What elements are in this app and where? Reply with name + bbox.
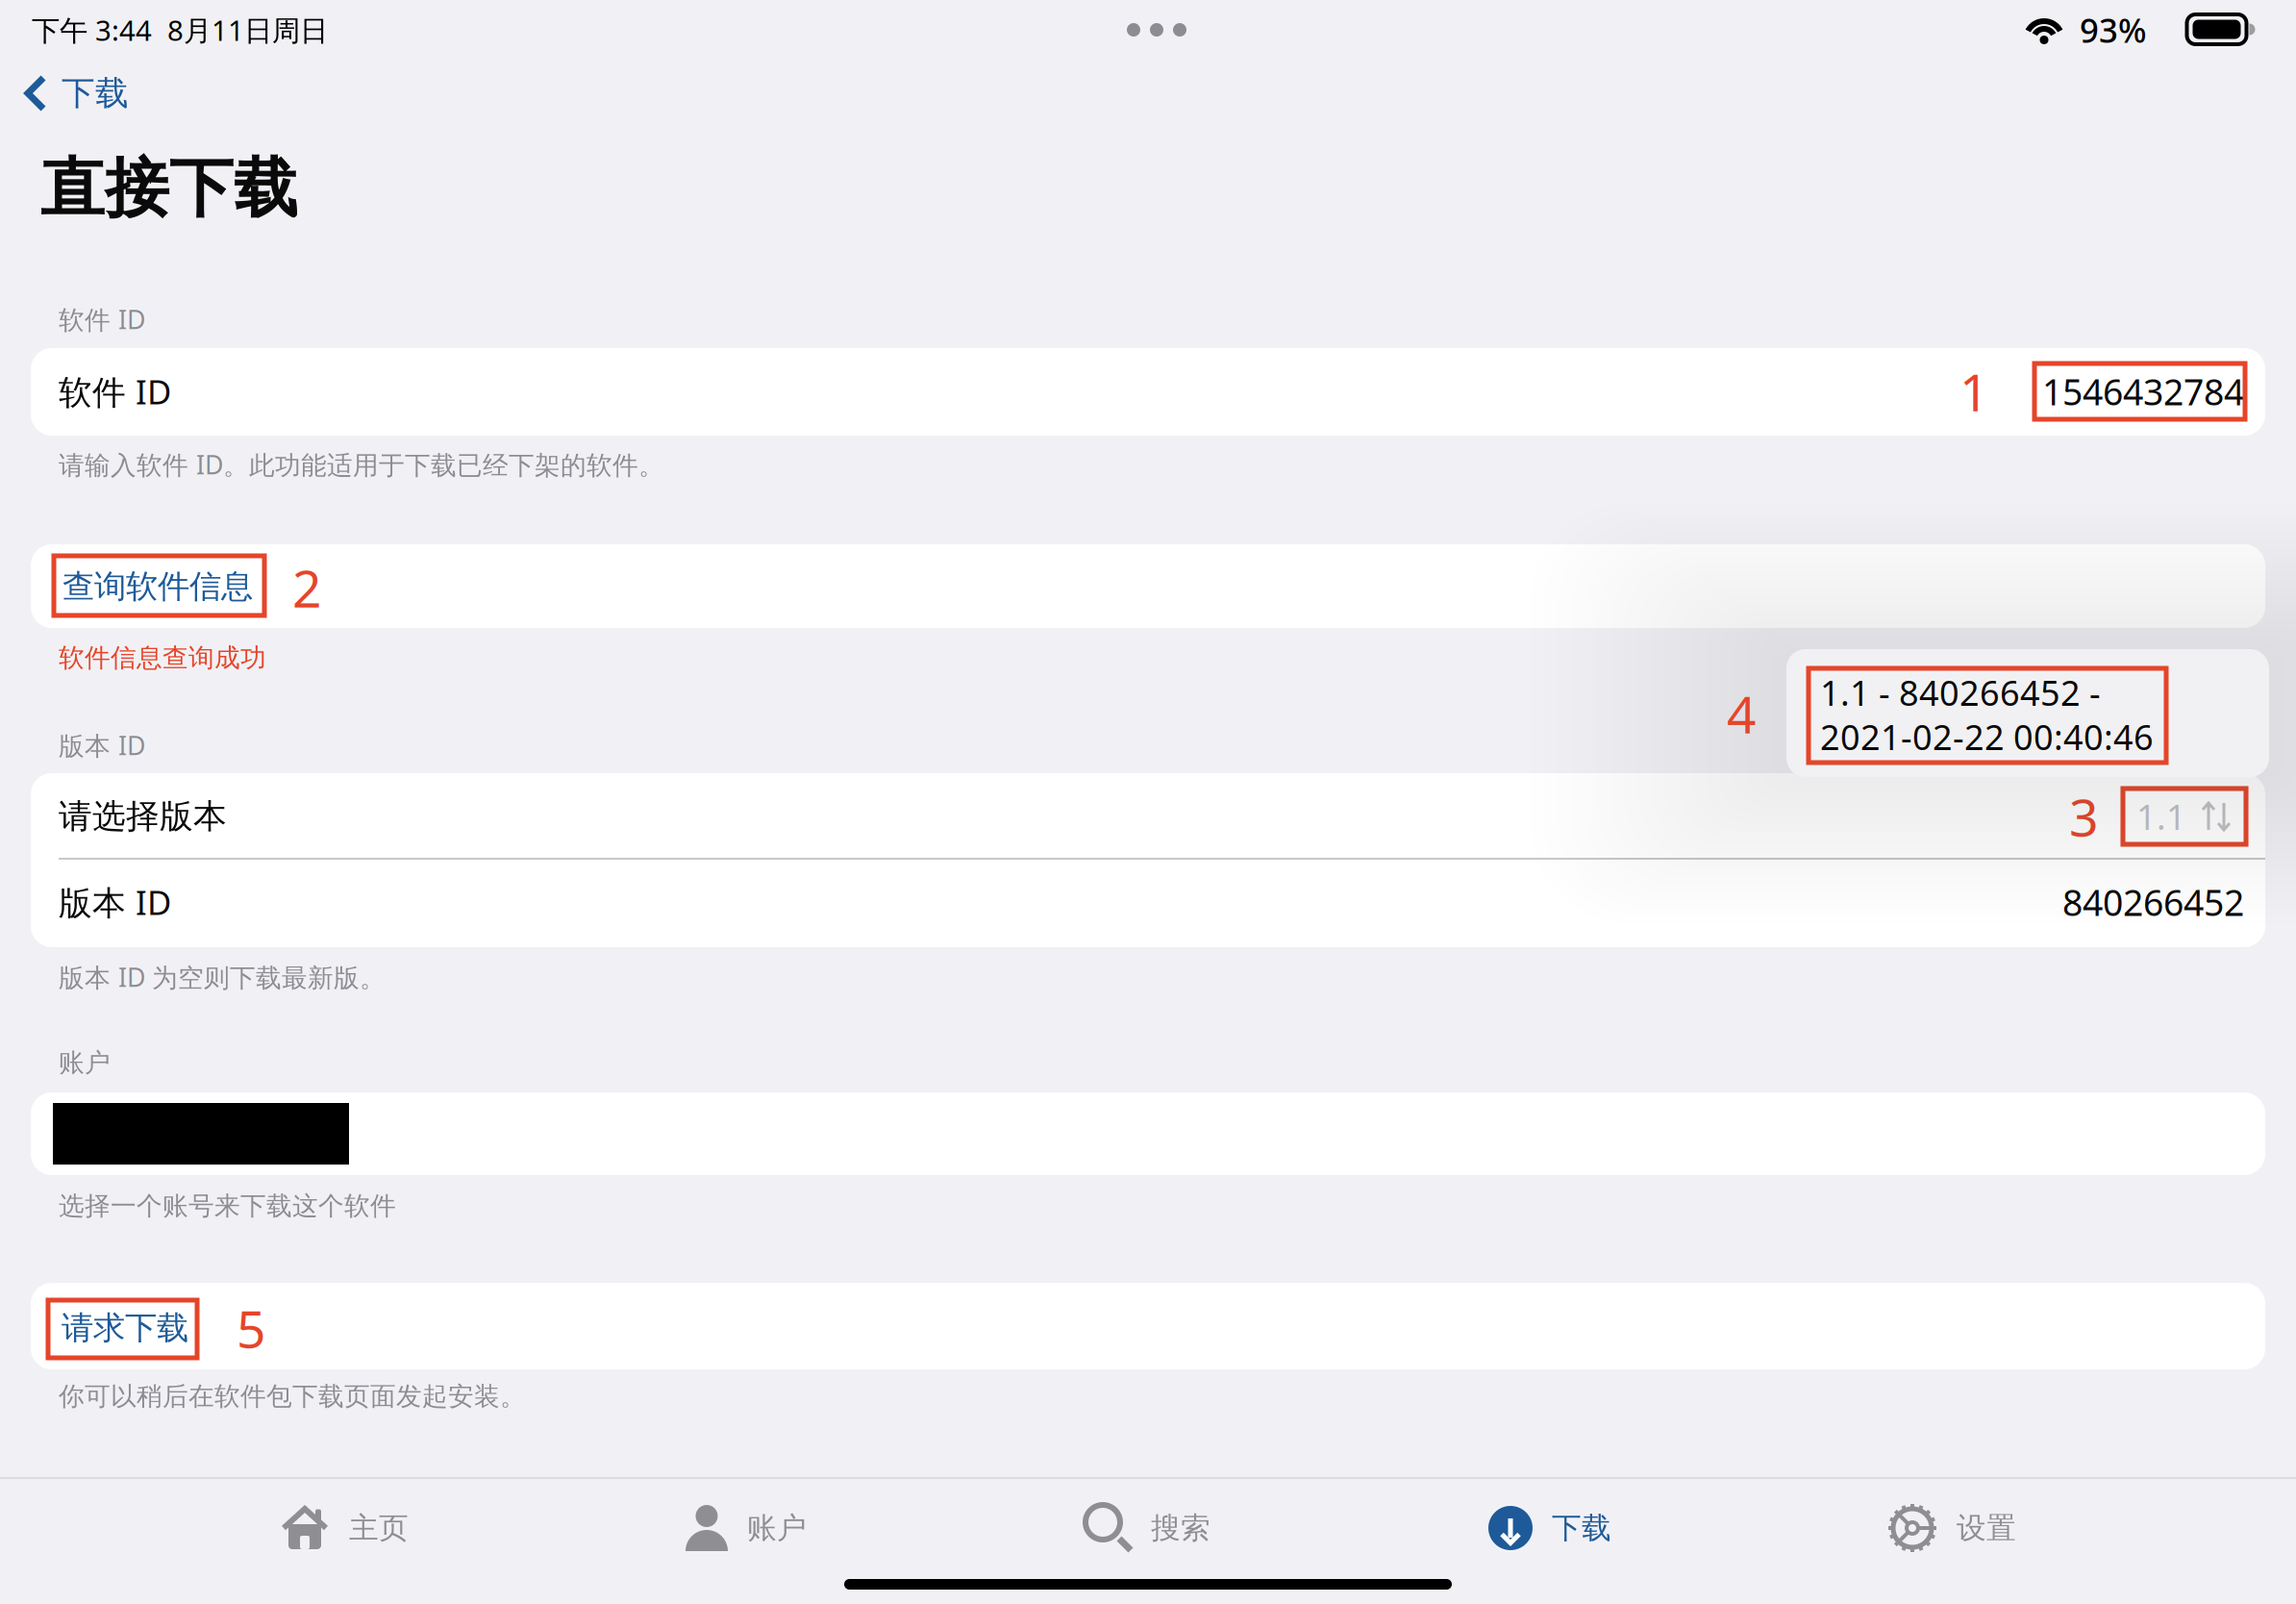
staticText: 下午 3:44 <box>32 11 152 49</box>
button[interactable]: 设置 <box>1751 1480 2153 1576</box>
staticText: 2 <box>292 554 322 622</box>
button[interactable]: 查询软件信息 <box>0 0 2296 1604</box>
staticText: 下载 <box>62 73 129 114</box>
staticText: 请输入软件 ID。此功能适用于下载已经下架的软件。 <box>59 447 664 481</box>
button[interactable]: 1.1 - 840266452 - <box>0 0 2296 1604</box>
staticText: 软件 ID <box>59 302 145 336</box>
staticText: 版本 ID 为空则下载最新版。 <box>59 960 386 994</box>
staticText: 你可以稍后在软件包下载页面发起安装。 <box>59 1381 526 1412</box>
button[interactable]: 下载 <box>1349 1480 1751 1576</box>
staticText: 下载 <box>1552 1510 1611 1546</box>
staticText: 主页 <box>349 1510 409 1546</box>
staticText: 版本 ID <box>59 728 145 762</box>
staticText: 5 <box>237 1294 266 1362</box>
button[interactable]: 请选择版本 <box>0 0 2296 1604</box>
button[interactable]: 下载 <box>0 0 2296 1604</box>
staticText: 账户 <box>747 1510 807 1546</box>
staticText: 设置 <box>1957 1510 2016 1546</box>
button[interactable]: 账户 <box>545 1480 947 1576</box>
staticText: 8月11日周日 <box>167 11 328 49</box>
staticText: 请选择版本 <box>59 796 227 837</box>
staticText: 1 <box>1959 357 1989 425</box>
button[interactable]: 搜索 <box>947 1480 1349 1576</box>
staticText: 搜索 <box>1151 1510 1210 1546</box>
staticText: 3 <box>2069 782 2099 850</box>
button[interactable]: 请求下载 <box>0 0 2296 1604</box>
staticText: 账户 <box>59 1047 111 1078</box>
staticText: 1.1 - 840266452 - <box>1820 669 2101 715</box>
staticText: 软件 ID <box>59 369 171 414</box>
staticText: 840266452 <box>2062 878 2244 926</box>
staticText: 请求下载 <box>62 1308 188 1348</box>
staticText: 93% <box>2080 8 2147 52</box>
button[interactable]: 账户 <box>0 0 2296 1604</box>
staticText: 4 <box>1727 679 1757 748</box>
staticText: 选择一个账号来下载这个软件 <box>59 1190 396 1222</box>
staticText: 查询软件信息 <box>62 567 253 606</box>
staticText: 1.1 <box>2136 793 2186 839</box>
button[interactable]: 主页 <box>143 1480 545 1576</box>
staticText: 1546432784 <box>2042 368 2244 415</box>
staticText: 2021-02-22 00:40:46 <box>1820 714 2154 760</box>
staticText: 直接下载 <box>40 149 298 228</box>
staticText: 软件信息查询成功 <box>59 642 266 674</box>
staticText: 版本 ID <box>59 880 171 924</box>
button[interactable]: 软件 ID <box>0 0 2296 1604</box>
